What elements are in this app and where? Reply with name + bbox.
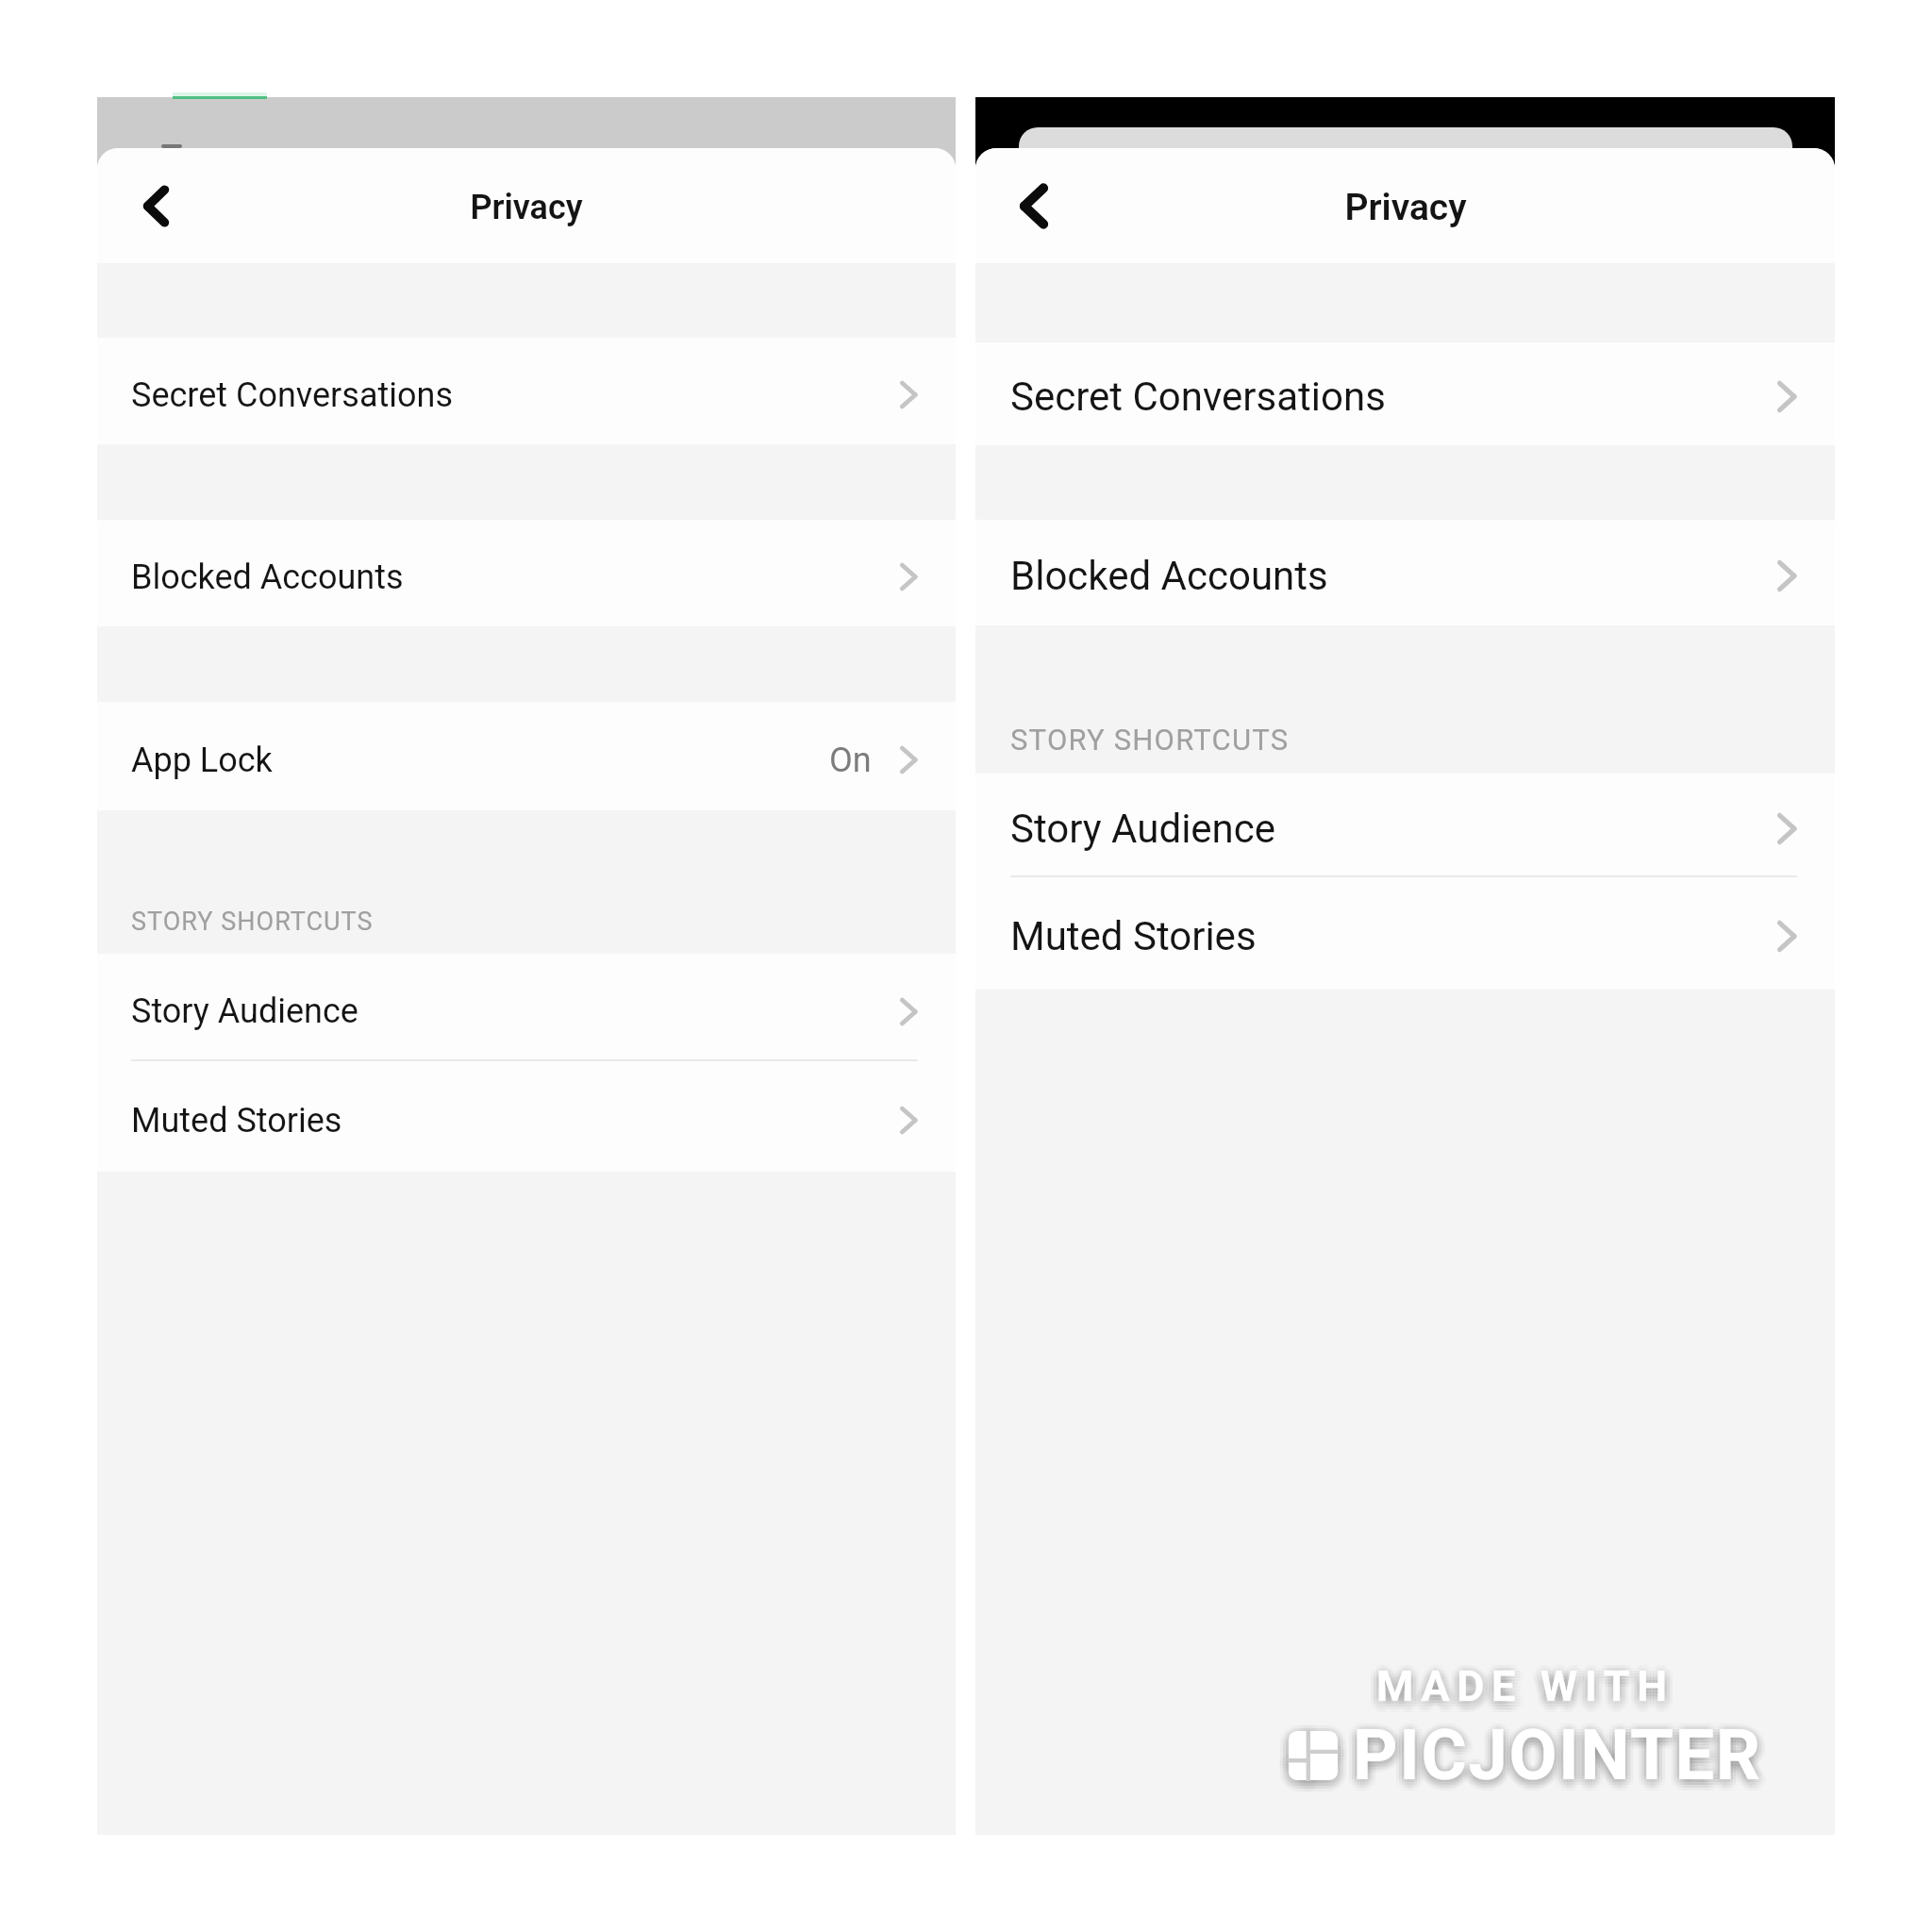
staticText: STORY SHORTCUTS	[1010, 723, 1290, 757]
staticText: PICJOINTER	[1358, 1717, 1768, 1799]
staticText: PICJOINTER	[1356, 1725, 1765, 1807]
staticText: MADE WITH	[1376, 1656, 1674, 1706]
staticText: PICJOINTER	[1353, 1720, 1762, 1802]
staticText: Privacy	[470, 188, 583, 227]
staticText: MADE WITH	[1385, 1667, 1683, 1717]
button[interactable]: Muted Stories	[97, 1061, 956, 1172]
staticText: MADE WITH	[1376, 1670, 1674, 1720]
staticText: MADE WITH	[1382, 1658, 1680, 1708]
staticText: PICJOINTER	[1356, 1723, 1765, 1805]
staticText: PICJOINTER	[1344, 1714, 1754, 1796]
staticText: PICJOINTER	[1353, 1714, 1762, 1796]
staticText: MADE WITH	[1371, 1670, 1669, 1720]
staticText: Story Audience	[1010, 806, 1276, 852]
staticText: On	[829, 741, 872, 780]
staticText: MADE WITH	[1374, 1656, 1672, 1706]
staticText: PICJOINTER	[1350, 1708, 1759, 1790]
staticText: Secret Conversations	[1010, 374, 1386, 420]
staticText: PICJOINTER	[1361, 1720, 1771, 1802]
staticText: PICJOINTER	[1361, 1714, 1771, 1796]
staticText: PICJOINTER	[1347, 1720, 1757, 1802]
button[interactable]: Blocked Accounts	[975, 520, 1835, 625]
staticText: PICJOINTER	[1356, 1714, 1765, 1796]
staticText: MADE WITH	[1371, 1667, 1669, 1717]
staticText: PICJOINTER	[1353, 1723, 1762, 1805]
staticText: MADE WITH	[1374, 1667, 1672, 1717]
staticText: Blocked Accounts	[131, 558, 404, 597]
staticText: MADE WITH	[1382, 1667, 1680, 1717]
staticText: Secret Conversations	[131, 375, 453, 415]
staticText: PICJOINTER	[1356, 1720, 1765, 1802]
staticText: PICJOINTER	[1358, 1711, 1768, 1793]
staticText: Story Audience	[131, 991, 358, 1031]
staticText: PICJOINTER	[1353, 1708, 1762, 1790]
staticText: PICJOINTER	[1356, 1711, 1765, 1793]
staticText: MADE WITH	[1368, 1661, 1666, 1711]
staticText: PICJOINTER	[1356, 1717, 1765, 1799]
staticText: PICJOINTER	[1358, 1714, 1768, 1796]
staticText: MADE WITH	[1379, 1670, 1677, 1720]
staticText: MADE WITH	[1374, 1664, 1672, 1714]
staticText: Muted Stories	[131, 1101, 342, 1141]
staticText: PICJOINTER	[1347, 1717, 1757, 1799]
staticText: MADE WITH	[1371, 1664, 1669, 1714]
staticText: PICJOINTER	[1353, 1725, 1762, 1807]
staticText: MADE WITH	[1374, 1661, 1672, 1711]
staticText: MADE WITH	[1374, 1658, 1672, 1708]
staticText: PICJOINTER	[1350, 1723, 1759, 1805]
button[interactable]: Back	[999, 171, 1069, 241]
staticText: MADE WITH	[1368, 1664, 1666, 1714]
staticText: MADE WITH	[1376, 1661, 1674, 1711]
button[interactable]: App Lock	[97, 702, 956, 810]
staticText: MADE WITH	[1371, 1658, 1669, 1708]
staticText: PICJOINTER	[1358, 1723, 1768, 1805]
staticText: PICJOINTER	[1353, 1711, 1762, 1793]
staticText: PICJOINTER	[1344, 1720, 1754, 1802]
staticText: MADE WITH	[1371, 1661, 1669, 1711]
staticText: MADE WITH	[1379, 1658, 1677, 1708]
staticText: MADE WITH	[1379, 1661, 1677, 1711]
staticText: PICJOINTER	[1350, 1714, 1759, 1796]
button[interactable]: Secret Conversations	[975, 342, 1835, 445]
staticText: MADE WITH	[1376, 1667, 1674, 1717]
staticText: Privacy	[1344, 186, 1467, 229]
staticText: MADE WITH	[1379, 1673, 1677, 1723]
staticText: PICJOINTER	[1344, 1717, 1754, 1799]
staticText: MADE WITH	[1376, 1673, 1674, 1723]
staticText: PICJOINTER	[1353, 1717, 1762, 1799]
staticText: MADE WITH	[1368, 1667, 1666, 1717]
staticText: PICJOINTER	[1353, 1714, 1762, 1796]
staticText: PICJOINTER	[1347, 1714, 1757, 1796]
staticText: MADE WITH	[1382, 1661, 1680, 1711]
staticText: MADE WITH	[1374, 1670, 1672, 1720]
button[interactable]: Blocked Accounts	[97, 520, 956, 626]
staticText: PICJOINTER	[1356, 1708, 1765, 1790]
staticText: Muted Stories	[1010, 913, 1257, 959]
staticText: MADE WITH	[1376, 1658, 1674, 1708]
button[interactable]: Story Audience	[97, 954, 956, 1061]
staticText: PICJOINTER	[1350, 1725, 1759, 1807]
staticText: MADE WITH	[1379, 1656, 1677, 1706]
staticText: MADE WITH	[1382, 1664, 1680, 1714]
staticText: PICJOINTER	[1347, 1711, 1757, 1793]
staticText: PICJOINTER	[1347, 1723, 1757, 1805]
button[interactable]: Back	[121, 171, 191, 241]
button[interactable]: Secret Conversations	[97, 338, 956, 444]
staticText: MADE WITH	[1374, 1673, 1672, 1723]
staticText: STORY SHORTCUTS	[131, 907, 374, 937]
staticText: PICJOINTER	[1361, 1717, 1771, 1799]
staticText: PICJOINTER	[1358, 1720, 1768, 1802]
staticText: MADE WITH	[1379, 1664, 1677, 1714]
staticText: MADE WITH	[1379, 1667, 1677, 1717]
staticText: Blocked Accounts	[1010, 553, 1328, 599]
staticText: MADE WITH	[1376, 1664, 1674, 1714]
staticText: PICJOINTER	[1350, 1717, 1759, 1799]
staticText: MADE WITH	[1385, 1661, 1683, 1711]
staticText: MADE WITH	[1376, 1661, 1674, 1711]
staticText: PICJOINTER	[1350, 1720, 1759, 1802]
button[interactable]: Story Audience	[975, 774, 1835, 877]
staticText: PICJOINTER	[1350, 1711, 1759, 1793]
button[interactable]: Muted Stories	[975, 877, 1835, 990]
staticText: MADE WITH	[1385, 1664, 1683, 1714]
staticText: App Lock	[131, 741, 273, 780]
